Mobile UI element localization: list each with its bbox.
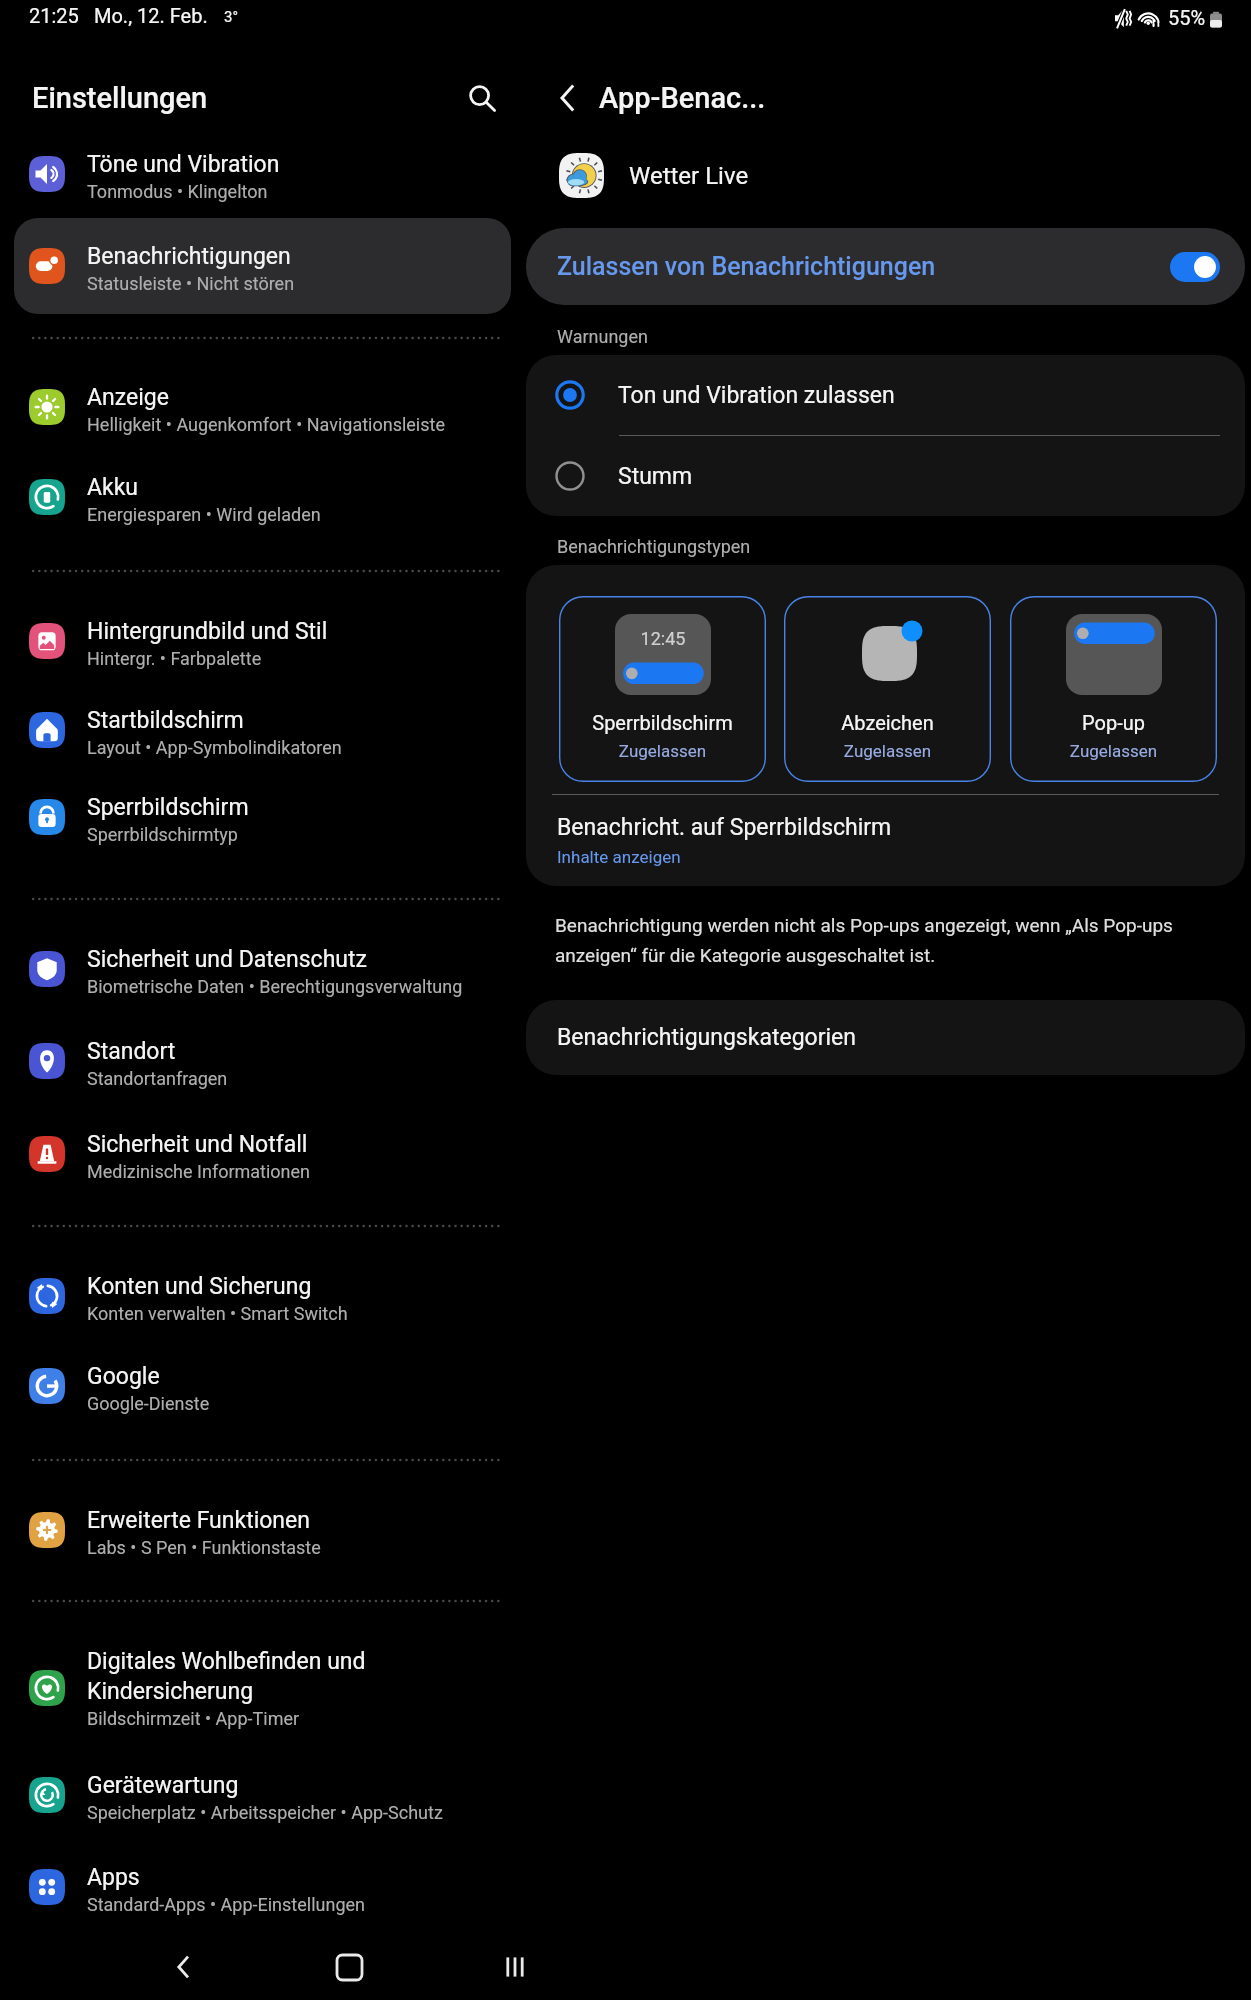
staticText: Sicherheit und Datenschutz [87,946,367,973]
staticText: Konten und Sicherung [87,1273,312,1300]
button[interactable]: Standort [14,1013,511,1109]
staticText: Zugelassen [1010,741,1217,761]
staticText: Energiesparen • Wird geladen [87,504,321,525]
staticText: Apps [87,1864,140,1891]
staticText: Tonmodus • Klingelton [87,181,268,202]
staticText: Gerätewartung [87,1772,239,1799]
button[interactable]: Startbildschirm [313,1931,385,2000]
button[interactable]: Benachrichtigungskategorien [526,1000,1245,1075]
button[interactable]: Anzeige [14,359,511,455]
staticText: Google-Dienste [87,1393,210,1414]
staticText: Bildschirmzeit • App-Timer [87,1708,300,1729]
staticText: Stumm [618,463,693,490]
staticText: 21:25 [29,4,79,27]
staticText: Anzeige [87,384,169,411]
staticText: Standard-Apps • App-Einstellungen [87,1894,365,1915]
staticText: Helligkeit • Augenkomfort • Navigationsl… [87,414,445,435]
button[interactable]: Akku [14,449,511,545]
staticText: 55% [1168,6,1206,29]
staticText: Wetter Live [629,162,749,190]
button[interactable]: Suchen [458,74,506,122]
staticText: 12:45 [615,628,711,649]
staticText: Zugelassen [559,741,766,761]
staticText: Standortanfragen [87,1068,228,1089]
button[interactable]: Erweiterte Funktionen [14,1482,511,1578]
staticText: Sperrbildschirmtyp [87,824,238,845]
staticText: Kindersicherung [87,1678,254,1705]
button[interactable]: Töne und Vibration [14,126,511,222]
staticText: 3° [224,8,239,26]
button[interactable]: Sicherheit und Notfall [14,1106,511,1202]
button[interactable]: Zurück [148,1931,220,2000]
staticText: Speicherplatz • Arbeitsspeicher • App-Sc… [87,1802,443,1823]
staticText: Layout • App-Symbolindikatoren [87,737,342,758]
staticText: Benachrichtigungstypen [557,536,751,557]
button[interactable]: Sperrbildschirm [14,769,511,865]
button[interactable]: Digitales Wohlbefinden und [14,1629,511,1747]
button[interactable]: Benachrichtigungen [14,218,511,314]
staticText: Statusleiste • Nicht stören [87,273,295,294]
staticText: Sperrbildschirm [559,711,766,734]
staticText: Biometrische Daten • Berechtigungsverwal… [87,976,463,997]
button[interactable]: Google [14,1338,511,1434]
staticText: Startbildschirm [87,707,244,734]
staticText: Einstellungen [32,81,208,115]
staticText: Medizinische Informationen [87,1161,311,1182]
staticText: Hintergr. • Farbpalette [87,648,262,669]
staticText: Digitales Wohlbefinden und [87,1648,366,1675]
staticText: Warnungen [557,326,648,347]
button[interactable]: Zulassen von Benachrichtigungen [526,228,1245,305]
button[interactable]: Zurück [543,73,593,123]
staticText: Standort [87,1038,176,1065]
button[interactable]: Letzte Apps [479,1931,551,2000]
staticText: Ton und Vibration zulassen [618,382,895,409]
staticText: Google [87,1363,160,1390]
button[interactable]: 12:45 [559,596,766,782]
button[interactable]: Apps [14,1839,511,1935]
button[interactable]: Abzeichen [784,596,991,782]
staticText: Sicherheit und Notfall [87,1131,308,1158]
staticText: Benachrichtigung werden nicht als Pop-up… [555,914,1195,966]
staticText: Labs • S Pen • Funktionstaste [87,1537,321,1558]
button[interactable]: Gerätewartung [14,1747,511,1843]
staticText: Benachrichtigungskategorien [557,1024,856,1051]
staticText: Sperrbildschirm [87,794,249,821]
staticText: Töne und Vibration [87,151,280,178]
staticText: Zugelassen [784,741,991,761]
staticText: Erweiterte Funktionen [87,1507,310,1534]
button[interactable]: Hintergrundbild und Stil [14,593,511,689]
staticText: Akku [87,474,138,501]
staticText: Benachrichtigungen [87,243,291,270]
staticText: Konten verwalten • Smart Switch [87,1303,348,1324]
staticText: Abzeichen [784,711,991,734]
staticText: Zulassen von Benachrichtigungen [557,252,936,281]
button[interactable]: Sicherheit und Datenschutz [14,921,511,1017]
button[interactable]: Ton und Vibration zulassen [526,355,1245,435]
button[interactable]: Stumm [526,436,1245,516]
staticText: Benachricht. auf Sperrbildschirm [557,814,892,841]
button[interactable]: Pop-up [1010,596,1217,782]
staticText: Mo., 12. Feb. [94,4,208,27]
staticText: Pop-up [1010,711,1217,734]
button[interactable]: Konten und Sicherung [14,1248,511,1344]
button[interactable]: Startbildschirm [14,682,511,778]
button[interactable]: Benachricht. auf Sperrbildschirm [526,795,1245,886]
staticText: App-Benac... [599,81,766,115]
staticText: Hintergrundbild und Stil [87,618,328,645]
staticText: Inhalte anzeigen [557,847,681,867]
